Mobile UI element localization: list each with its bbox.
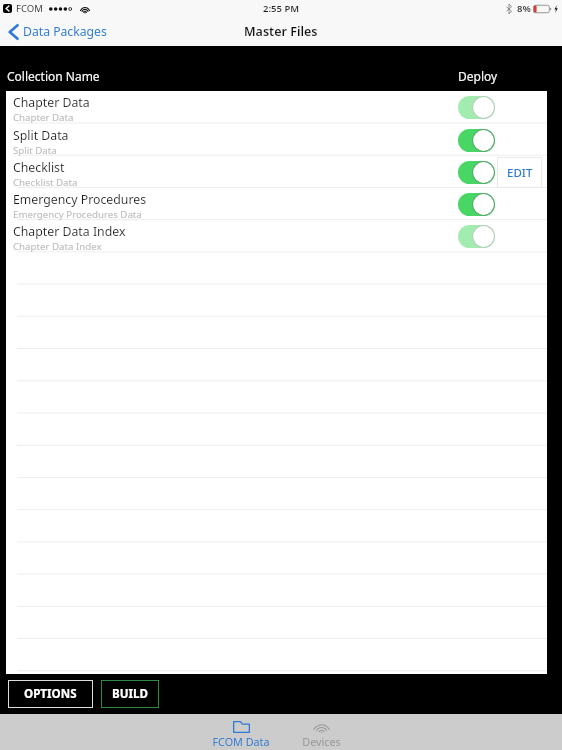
- button[interactable]: OPTIONS: [8, 680, 93, 708]
- staticText: Deploy: [458, 68, 498, 84]
- staticText: Split Data: [13, 127, 69, 144]
- staticText: Master Files: [244, 23, 318, 40]
- button[interactable]: Chapter Data: [6, 91, 547, 123]
- staticText: Data Packages: [23, 23, 107, 40]
- button[interactable]: Deploy toggle: [458, 129, 495, 152]
- button[interactable]: Deploy toggle: [458, 225, 495, 248]
- staticText: BUILD: [112, 686, 148, 702]
- staticText: Chapter Data: [13, 111, 74, 124]
- button[interactable]: FCOM Data: [201, 714, 281, 750]
- staticText: 8%: [517, 2, 531, 15]
- button[interactable]: Deploy toggle: [458, 161, 495, 184]
- staticText: Chapter Data Index: [13, 240, 102, 253]
- button[interactable]: Deploy toggle: [458, 193, 495, 216]
- button[interactable]: Devices: [281, 714, 361, 750]
- button[interactable]: Data Packages: [9, 23, 107, 40]
- staticText: EDIT: [507, 165, 533, 181]
- button[interactable]: Checklist: [6, 156, 547, 188]
- staticText: OPTIONS: [24, 686, 77, 702]
- button[interactable]: Emergency Procedures: [6, 188, 547, 220]
- button[interactable]: Split Data: [6, 124, 547, 156]
- staticText: Chapter Data: [13, 94, 90, 111]
- staticText: Collection Name: [7, 68, 100, 84]
- staticText: 2:55 PM: [263, 2, 300, 15]
- staticText: FCOM: [16, 2, 43, 15]
- staticText: Chapter Data Index: [13, 223, 126, 240]
- staticText: Checklist Data: [13, 176, 78, 189]
- staticText: Emergency Procedures Data: [13, 208, 142, 221]
- staticText: Devices: [302, 734, 341, 749]
- staticText: FCOM Data: [212, 734, 270, 749]
- button[interactable]: EDIT: [497, 157, 542, 188]
- button[interactable]: Deploy toggle: [458, 96, 495, 119]
- staticText: Split Data: [13, 144, 57, 157]
- staticText: Checklist: [13, 159, 65, 176]
- staticText: Emergency Procedures: [13, 191, 147, 208]
- button[interactable]: Chapter Data Index: [6, 220, 547, 252]
- button[interactable]: BUILD: [101, 680, 159, 708]
